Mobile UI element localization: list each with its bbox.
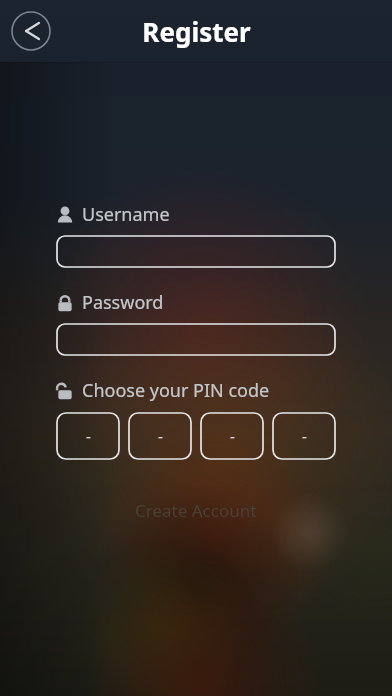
staticText: - <box>230 426 235 446</box>
button[interactable]: - <box>128 412 192 460</box>
staticText: - <box>86 426 91 446</box>
staticText: Register <box>142 14 251 49</box>
staticText: - <box>302 426 307 446</box>
staticText: Username <box>82 202 170 227</box>
staticText: Choose your PIN code <box>82 378 270 403</box>
staticText: Create Account <box>135 499 257 522</box>
button[interactable]: Create Account <box>56 490 336 530</box>
button[interactable]: - <box>272 412 336 460</box>
staticText: - <box>158 426 163 446</box>
button[interactable] <box>56 235 336 268</box>
staticText: Password <box>82 290 164 315</box>
button[interactable] <box>56 323 336 356</box>
button[interactable]: - <box>200 412 264 460</box>
button[interactable]: Back <box>8 8 54 54</box>
button[interactable]: - <box>56 412 120 460</box>
